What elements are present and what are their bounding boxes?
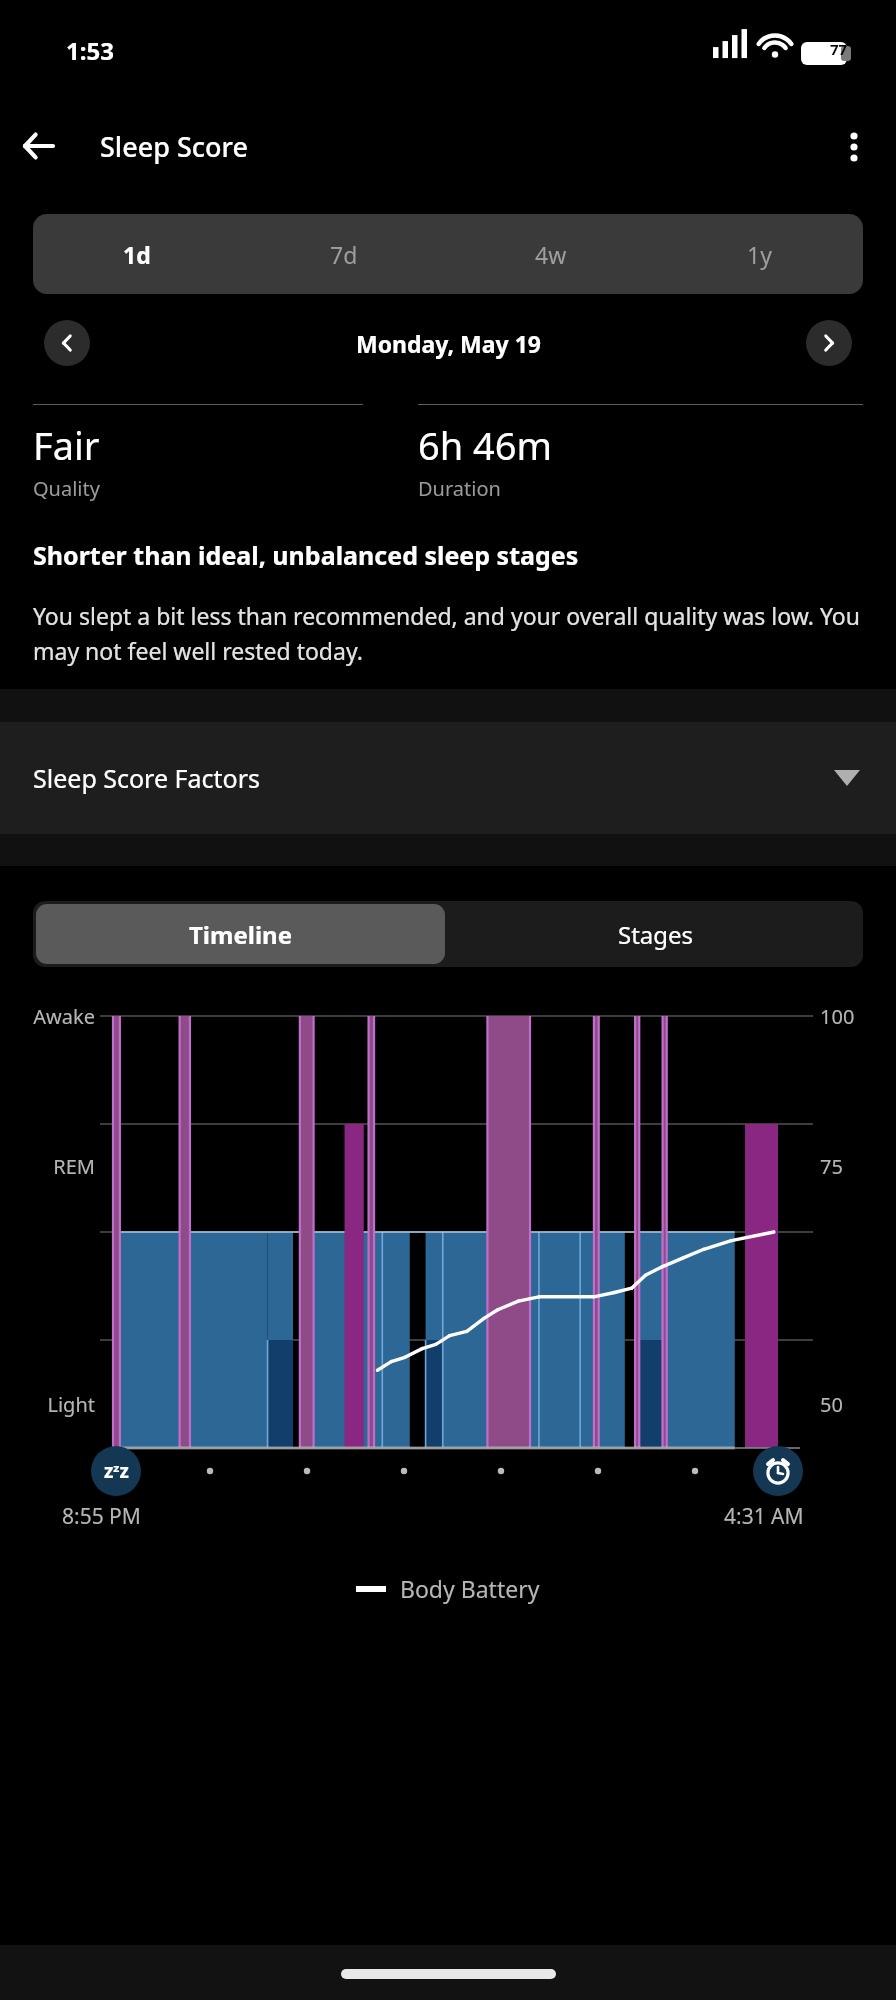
- button[interactable]: 7d: [240, 214, 447, 294]
- staticText: 7d: [330, 239, 358, 270]
- staticText: Fair: [33, 419, 100, 471]
- button[interactable]: 4w: [447, 214, 655, 294]
- button[interactable]: 1y: [655, 214, 863, 294]
- staticText: 4w: [535, 239, 567, 270]
- button[interactable]: Next day: [806, 320, 852, 366]
- button[interactable]: More options: [826, 118, 882, 174]
- staticText: 75: [820, 1153, 843, 1180]
- staticText: Timeline: [189, 918, 293, 951]
- button[interactable]: Wake time: [753, 1446, 803, 1496]
- button[interactable]: Back: [10, 118, 66, 174]
- staticText: Sleep Score Factors: [33, 761, 260, 795]
- button[interactable]: Sleep start: [91, 1446, 141, 1496]
- staticText: 6h 46m: [418, 419, 553, 471]
- staticText: 1d: [123, 239, 151, 270]
- staticText: You slept a bit less than recommended, a…: [33, 600, 863, 667]
- staticText: 1:53: [66, 34, 114, 67]
- staticText: Light: [0, 1391, 95, 1418]
- staticText: REM: [0, 1153, 95, 1180]
- staticText: 77: [830, 39, 848, 59]
- staticText: 8:55 PM: [62, 1502, 141, 1531]
- staticText: Stages: [618, 918, 694, 951]
- staticText: Body Battery: [400, 1573, 540, 1604]
- staticText: Duration: [418, 475, 501, 502]
- staticText: Monday, May 19: [356, 328, 541, 359]
- button[interactable]: Sleep Score Factors: [0, 722, 896, 834]
- staticText: 50: [820, 1391, 843, 1418]
- button[interactable]: 1d: [33, 214, 240, 294]
- staticText: Sleep Score: [100, 128, 248, 165]
- staticText: zᶻz: [104, 1458, 129, 1484]
- button[interactable]: Stages: [448, 901, 863, 967]
- staticText: Awake: [0, 1003, 95, 1030]
- button[interactable]: Previous day: [44, 320, 90, 366]
- staticText: Shorter than ideal, unbalanced sleep sta…: [33, 538, 579, 572]
- staticText: 1y: [747, 239, 772, 270]
- staticText: Quality: [33, 475, 100, 502]
- button[interactable]: Timeline: [36, 904, 445, 964]
- staticText: 100: [820, 1003, 855, 1030]
- staticText: 4:31 AM: [724, 1502, 804, 1531]
